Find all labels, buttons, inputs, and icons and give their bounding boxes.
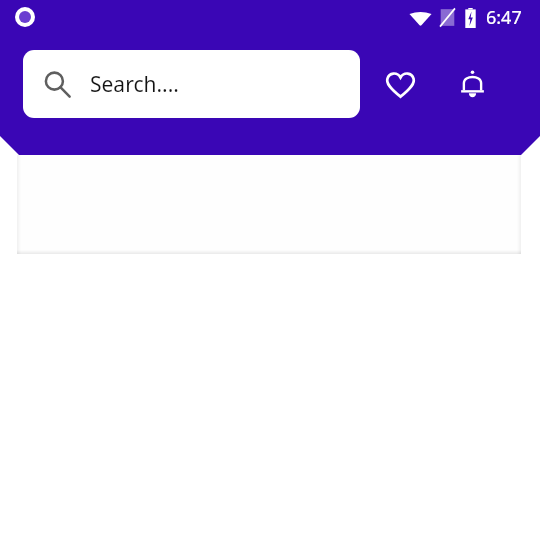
staticText: Search....	[90, 70, 179, 99]
button[interactable]: Notifications	[444, 56, 500, 112]
staticText: 6:47	[486, 5, 522, 30]
button[interactable]: Search....	[23, 50, 360, 118]
button[interactable]: Favorites	[372, 56, 428, 112]
